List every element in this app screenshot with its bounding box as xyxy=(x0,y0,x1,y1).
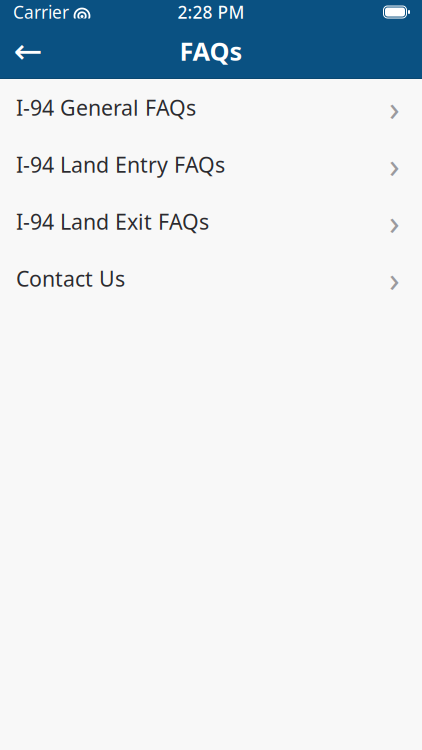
button[interactable]: I-94 Land Exit FAQs xyxy=(0,193,422,250)
staticText: ← xyxy=(13,31,42,71)
staticText: › xyxy=(389,255,400,301)
staticText: I-94 General FAQs xyxy=(16,93,196,122)
staticText: › xyxy=(389,141,400,187)
staticText: › xyxy=(389,84,400,130)
button[interactable]: I-94 General FAQs xyxy=(0,79,422,136)
staticText: › xyxy=(389,198,400,244)
button[interactable]: Contact Us xyxy=(0,250,422,307)
button[interactable]: I-94 Land Entry FAQs xyxy=(0,136,422,193)
staticText: I-94 Land Entry FAQs xyxy=(16,150,225,179)
staticText: 2:28 PM xyxy=(177,0,244,23)
button[interactable]: Back xyxy=(0,24,56,78)
staticText: FAQs xyxy=(179,34,242,68)
staticText: Carrier xyxy=(13,0,69,23)
staticText: Contact Us xyxy=(16,264,125,293)
staticText: I-94 Land Exit FAQs xyxy=(16,207,209,236)
